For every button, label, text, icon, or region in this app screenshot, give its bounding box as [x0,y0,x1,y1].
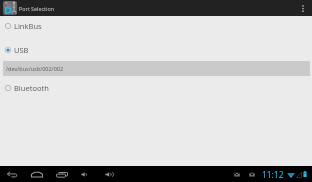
button[interactable]: /dev/bus/usb/002/002 [3,61,310,76]
staticText: Port Selection [19,5,55,12]
staticText: Bluetooth [14,83,49,93]
button[interactable]: Home [28,166,46,182]
button[interactable]: Recent apps [53,166,71,182]
button[interactable]: Bluetooth [0,82,312,94]
button[interactable]: More options [295,0,310,16]
button[interactable]: USB [0,44,312,56]
button[interactable]: LinkBus [0,20,312,32]
button[interactable]: Volume up [100,166,118,182]
staticText: USB [14,45,29,55]
staticText: LinkBus [14,21,42,31]
button[interactable]: Volume down [76,166,94,182]
staticText: 11:12 [262,169,284,180]
staticText: /dev/bus/usb/002/002 [6,65,64,72]
button[interactable]: Back [3,166,21,182]
